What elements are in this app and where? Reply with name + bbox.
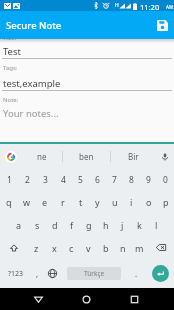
button[interactable]: Bir: [111, 144, 156, 169]
button[interactable]: c: [63, 236, 80, 259]
button[interactable]: Change language: [43, 259, 62, 288]
staticText: p: [163, 196, 169, 208]
staticText: test,example: [3, 77, 61, 90]
button[interactable]: o: [140, 191, 157, 213]
button[interactable]: Home: [74, 288, 99, 310]
button[interactable]: u: [106, 191, 123, 213]
button[interactable]: ne: [21, 144, 62, 169]
staticText: r: [61, 196, 65, 208]
button[interactable]: Period: [126, 259, 146, 288]
staticText: ,: [36, 268, 39, 279]
staticText: Secure Note: [6, 19, 62, 32]
staticText: Bir: [128, 151, 139, 162]
staticText: 11:20: [140, 2, 160, 12]
staticText: Note:: [3, 96, 19, 104]
button[interactable]: l: [148, 213, 165, 236]
button[interactable]: g: [80, 213, 97, 236]
button[interactable]: 9: [140, 169, 157, 191]
button[interactable]: y: [89, 191, 106, 213]
button[interactable]: Türkçe: [62, 259, 126, 288]
staticText: Title:: [3, 34, 17, 42]
staticText: q: [6, 196, 12, 208]
button[interactable]: Comma: [32, 259, 43, 288]
staticText: 8: [129, 174, 134, 186]
staticText: h: [103, 219, 109, 231]
button[interactable]: d: [46, 213, 63, 236]
staticText: Türkçe: [84, 269, 105, 278]
button[interactable]: Save: [150, 11, 174, 39]
button[interactable]: 4: [54, 169, 72, 191]
staticText: k: [137, 219, 142, 231]
button[interactable]: x: [45, 236, 63, 259]
staticText: 3: [43, 174, 48, 186]
staticText: 5: [78, 174, 83, 186]
button[interactable]: Backspace: [148, 236, 174, 259]
staticText: w: [23, 196, 31, 208]
button[interactable]: 5: [72, 169, 89, 191]
button[interactable]: q: [0, 191, 18, 213]
button[interactable]: j: [114, 213, 131, 236]
staticText: 7: [112, 174, 117, 186]
staticText: n: [120, 242, 126, 254]
button[interactable]: 2: [18, 169, 36, 191]
staticText: ben: [79, 151, 94, 162]
button[interactable]: 1: [0, 169, 18, 191]
button[interactable]: ben: [63, 144, 110, 169]
staticText: d: [52, 219, 58, 231]
button[interactable]: Voice input: [156, 144, 174, 169]
button[interactable]: s: [28, 213, 46, 236]
staticText: s: [35, 219, 40, 231]
button[interactable]: e: [36, 191, 54, 213]
button[interactable]: z: [27, 236, 45, 259]
staticText: Tags:: [3, 64, 18, 72]
staticText: z: [34, 242, 39, 254]
button[interactable]: r: [54, 191, 72, 213]
staticText: H: [115, 2, 119, 9]
button[interactable]: ?123: [0, 259, 32, 288]
staticText: f: [70, 219, 74, 231]
button[interactable]: Recents: [122, 288, 147, 310]
button[interactable]: v: [80, 236, 97, 259]
button[interactable]: 6: [89, 169, 106, 191]
staticText: t: [79, 196, 83, 208]
button[interactable]: b: [97, 236, 114, 259]
button[interactable]: m: [131, 236, 148, 259]
button[interactable]: 3: [36, 169, 54, 191]
button[interactable]: Back: [26, 288, 51, 310]
staticText: m: [135, 242, 144, 254]
button[interactable]: f: [63, 213, 80, 236]
button[interactable]: t: [72, 191, 89, 213]
staticText: e: [42, 196, 48, 208]
staticText: AM: [166, 4, 173, 10]
staticText: c: [69, 242, 74, 254]
button[interactable]: Shift: [0, 236, 27, 259]
staticText: o: [146, 196, 152, 208]
button[interactable]: 0: [157, 169, 174, 191]
staticText: i: [130, 196, 133, 208]
staticText: 1: [7, 174, 12, 186]
button[interactable]: a: [10, 213, 28, 236]
staticText: 9: [146, 174, 151, 186]
staticText: u: [112, 196, 118, 208]
staticText: g: [86, 219, 92, 231]
staticText: Test: [3, 45, 21, 58]
staticText: Your notes...: [3, 107, 59, 120]
staticText: .: [135, 268, 138, 279]
staticText: ne: [37, 151, 47, 162]
staticText: x: [52, 242, 57, 254]
button[interactable]: Enter: [146, 259, 174, 288]
button[interactable]: 7: [106, 169, 123, 191]
button[interactable]: p: [157, 191, 174, 213]
button[interactable]: n: [114, 236, 131, 259]
button[interactable]: h: [97, 213, 114, 236]
staticText: 2: [25, 174, 30, 186]
button[interactable]: 8: [123, 169, 140, 191]
button[interactable]: k: [131, 213, 148, 236]
staticText: v: [86, 242, 91, 254]
staticText: 6: [95, 174, 100, 186]
button[interactable]: i: [123, 191, 140, 213]
staticText: 0: [163, 174, 168, 186]
button[interactable]: w: [18, 191, 36, 213]
staticText: a: [16, 219, 22, 231]
button[interactable]: Google search: [0, 144, 21, 169]
